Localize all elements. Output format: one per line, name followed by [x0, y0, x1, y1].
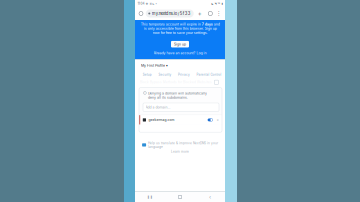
staticText: 11:04 [137, 2, 144, 5]
staticText: Learn more [171, 150, 189, 154]
button[interactable]: Parental Control [193, 71, 225, 78]
button[interactable]: Privacy [175, 71, 193, 78]
button[interactable]: New tab [195, 8, 204, 18]
staticText: Help us translate & improve NextDNS in y… [148, 141, 218, 149]
staticText: geekermag.com [148, 118, 174, 122]
staticText: Privacy [178, 73, 190, 76]
staticText: My First Profile ▾ [141, 63, 168, 67]
staticText: Setup [143, 73, 152, 76]
staticText: Denying a domain will automatically deny… [148, 91, 207, 99]
button[interactable]: Home [165, 195, 195, 199]
button[interactable]: Learn more [171, 150, 189, 154]
button[interactable]: More options [215, 8, 222, 18]
staticText: ❚❚ [147, 195, 153, 199]
button[interactable]: My First Profile ▾ [141, 63, 168, 67]
button[interactable]: Tabs [206, 8, 215, 18]
button[interactable]: Reload [136, 8, 145, 18]
button[interactable]: Setup [139, 71, 155, 78]
staticText: Parental Control [197, 73, 222, 76]
staticText: + [198, 10, 202, 17]
button[interactable]: Sign up [171, 41, 189, 47]
staticText: × [216, 118, 218, 122]
button[interactable]: Back [195, 194, 225, 200]
staticText: Already have an account? Log in [153, 51, 206, 55]
button[interactable]: geekermag.com [139, 115, 222, 125]
staticText: ⋮ [216, 10, 222, 17]
staticText: Sign up [174, 42, 186, 46]
button[interactable]: Recent apps [135, 195, 165, 199]
staticText: This temporary account will expire in 7 … [140, 22, 219, 35]
staticText: Security [158, 73, 171, 76]
button[interactable]: Already have an account? Log in [153, 51, 206, 55]
staticText: ◣ ◥ 74 ▮ [211, 2, 222, 5]
staticText: my.nextdns.io/5f33 [152, 11, 191, 16]
staticText: ‹ [209, 194, 211, 200]
staticText: ◆ ▣ ◣ ▾ [144, 2, 156, 5]
staticText: Add a domain... [146, 105, 171, 109]
button[interactable]: Security [155, 71, 175, 78]
